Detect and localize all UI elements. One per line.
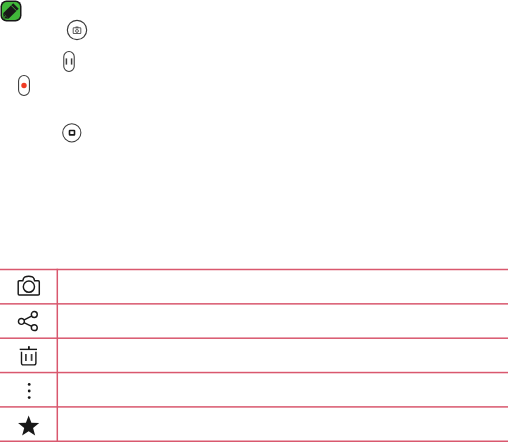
button[interactable]: Edit xyxy=(0,0,22,22)
button[interactable]: Stop xyxy=(62,123,83,144)
button[interactable]: Camera xyxy=(0,270,508,304)
button[interactable]: Favourite xyxy=(0,406,508,440)
button[interactable]: Share xyxy=(0,304,508,338)
button[interactable]: Pause xyxy=(62,51,76,72)
button[interactable]: More options xyxy=(0,372,508,406)
button[interactable]: Record xyxy=(17,75,31,96)
button[interactable]: Delete xyxy=(0,338,508,372)
button[interactable]: Camera shutter xyxy=(66,19,88,41)
